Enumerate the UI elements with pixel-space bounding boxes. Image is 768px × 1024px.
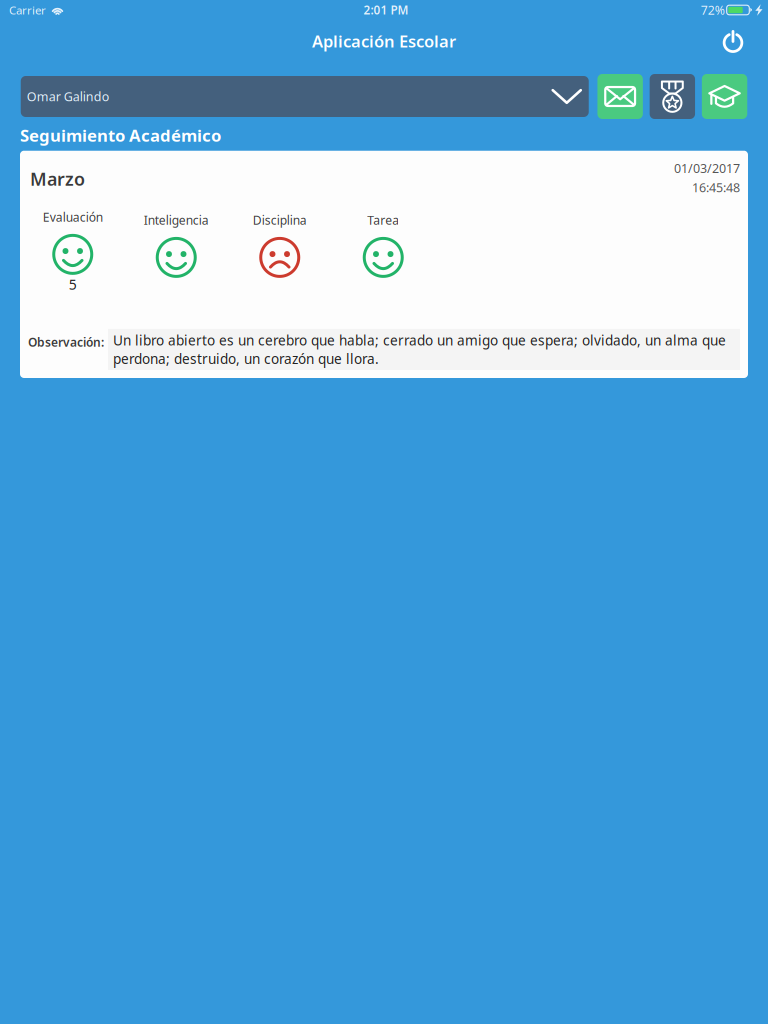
- button[interactable]: Cerrar sesión: [707, 23, 768, 59]
- button[interactable]: Méritos: [650, 74, 695, 119]
- staticText: 16:45:48: [692, 179, 740, 196]
- staticText: Carrier: [9, 2, 46, 18]
- staticText: Seguimiento Académico: [20, 124, 221, 147]
- staticText: 5: [69, 275, 77, 294]
- staticText: Marzo: [30, 167, 85, 191]
- staticText: Tarea: [367, 212, 399, 228]
- staticText: Un libro abierto es un cerebro que habla…: [113, 331, 726, 368]
- staticText: Inteligencia: [144, 212, 209, 228]
- staticText: Omar Galindo: [27, 88, 110, 105]
- staticText: Aplicación Escolar: [312, 30, 456, 52]
- staticText: 2:01 PM: [363, 2, 408, 18]
- staticText: Evaluación: [43, 209, 103, 225]
- button[interactable]: Académico: [702, 74, 747, 119]
- staticText: Observación:: [28, 334, 104, 350]
- button[interactable]: Mensajes: [597, 74, 643, 119]
- button[interactable]: Seleccionar alumno: [21, 76, 589, 117]
- staticText: 01/03/2017: [674, 160, 740, 177]
- staticText: 72%: [701, 2, 725, 18]
- staticText: Disciplina: [253, 212, 307, 228]
